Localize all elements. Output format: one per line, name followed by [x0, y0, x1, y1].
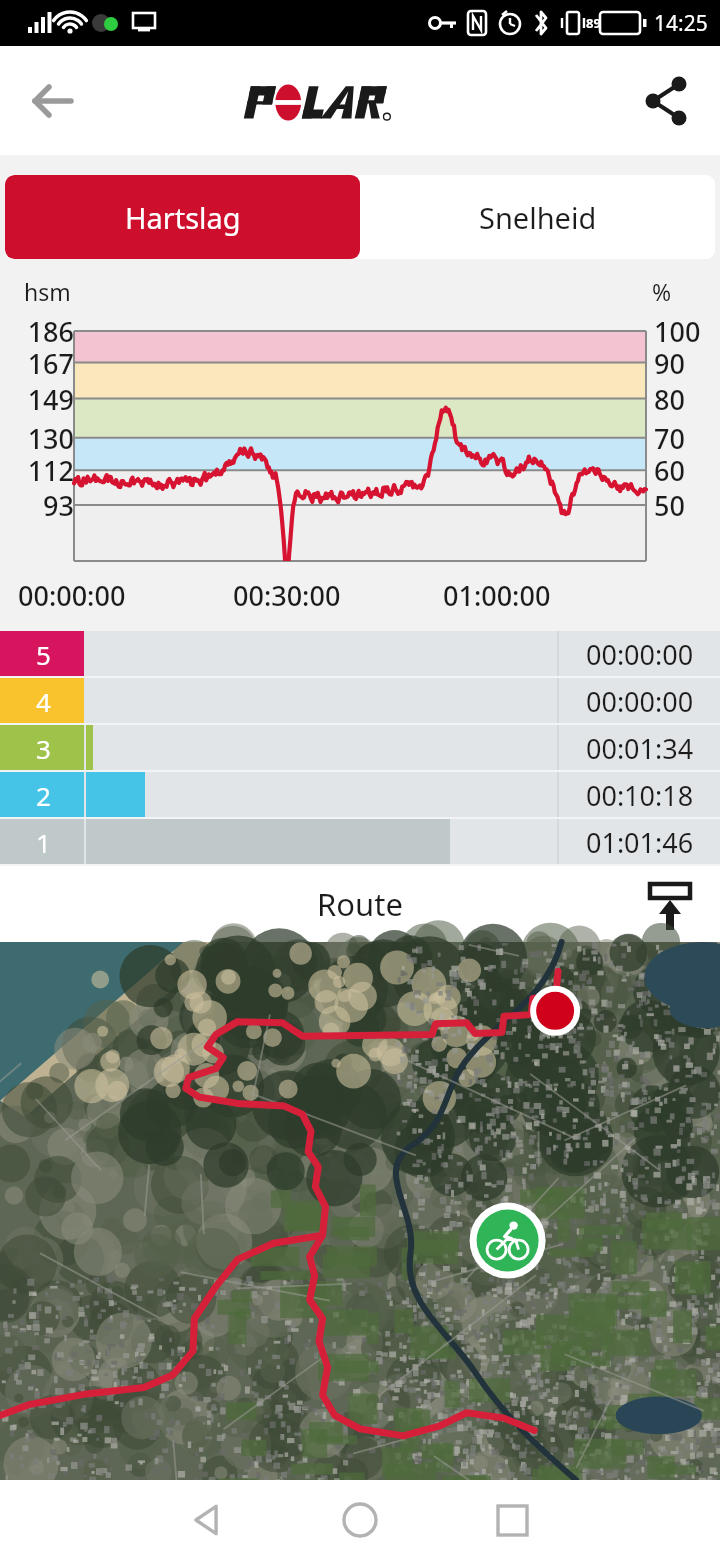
staticText: 00:00:00	[18, 577, 126, 614]
staticText: 130	[16, 420, 74, 457]
button[interactable]: Hartslag	[5, 175, 360, 259]
staticText: hsm	[24, 276, 71, 307]
staticText: 00:10:18	[586, 777, 694, 814]
staticText: 93	[16, 487, 74, 524]
staticText: Route	[317, 883, 403, 925]
staticText: 80	[654, 381, 714, 418]
staticText: 00:30:00	[233, 577, 341, 614]
staticText: 90	[654, 345, 714, 382]
staticText: 149	[16, 381, 74, 418]
button[interactable]: 2	[0, 772, 720, 819]
staticText: Hartslag	[125, 198, 241, 237]
button[interactable]: Snelheid	[360, 175, 715, 259]
button[interactable]: Home	[329, 1489, 391, 1551]
staticText: 14:25	[654, 9, 708, 38]
staticText: 00:00:00	[586, 683, 694, 720]
staticText: Snelheid	[479, 198, 597, 237]
staticText: 50	[654, 487, 714, 524]
button[interactable]: 3	[0, 725, 720, 772]
button[interactable]: Back	[22, 70, 84, 132]
button[interactable]: 4	[0, 678, 720, 725]
staticText: 89	[586, 14, 601, 32]
button[interactable]: 5	[0, 631, 720, 678]
staticText: %	[652, 276, 672, 307]
button[interactable]: Back	[175, 1489, 237, 1551]
staticText: 70	[654, 420, 714, 457]
staticText: 5	[36, 637, 51, 672]
staticText: 100	[654, 313, 714, 350]
staticText: 3	[36, 731, 51, 766]
staticText: 1	[36, 825, 51, 860]
button[interactable]: Recent apps	[481, 1489, 543, 1551]
staticText: 00:00:00	[586, 636, 694, 673]
staticText: 2	[36, 778, 51, 813]
staticText: 01:00:00	[443, 577, 551, 614]
staticText: 00:01:34	[586, 730, 694, 767]
button[interactable]: Export route	[642, 876, 698, 932]
button[interactable]: 1	[0, 819, 720, 866]
staticText: 01:01:46	[586, 824, 694, 861]
staticText: 186	[16, 313, 74, 350]
staticText: 167	[16, 345, 74, 382]
button[interactable]	[0, 942, 720, 1480]
button[interactable]: Share	[636, 70, 698, 132]
staticText: 4	[36, 684, 51, 719]
staticText: 112	[16, 452, 74, 489]
staticText: 60	[654, 452, 714, 489]
